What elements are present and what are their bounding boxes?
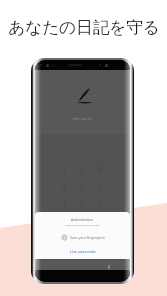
staticText: あなたの日記を守る bbox=[8, 17, 160, 38]
staticText: Enter your pin bbox=[73, 117, 92, 121]
staticText: Authentication bbox=[71, 218, 94, 222]
other: Back bbox=[106, 264, 112, 270]
staticText: Scan your fingerprint bbox=[70, 235, 105, 240]
staticText: 4 bbox=[62, 181, 67, 192]
button[interactable]: Use passcode bbox=[68, 247, 98, 256]
staticText: 2 bbox=[80, 163, 85, 174]
staticText: We need to be sure that this diary is sa… bbox=[65, 224, 100, 226]
staticText: Use passcode bbox=[70, 249, 96, 254]
